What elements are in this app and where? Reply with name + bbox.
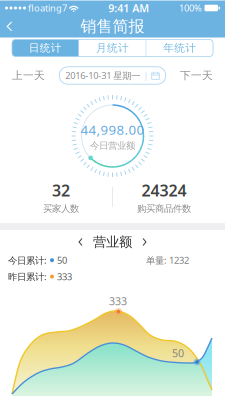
staticText: 年统计: [163, 41, 196, 54]
staticText: 销售简报: [80, 17, 144, 36]
button[interactable]: Previous metric: [75, 234, 86, 250]
staticText: 24324: [141, 180, 186, 201]
button[interactable]: Back: [0, 16, 19, 37]
staticText: 50: [172, 346, 184, 360]
staticText: 购买商品件数: [137, 203, 191, 214]
button[interactable]: 月统计: [79, 39, 146, 56]
button[interactable]: 2016-10-31 星期一: [59, 67, 166, 84]
button[interactable]: 日统计: [12, 39, 78, 56]
staticText: 上一天: [12, 69, 45, 82]
staticText: 下一天: [180, 69, 213, 82]
staticText: 今日营业额: [90, 140, 135, 151]
button[interactable]: 上一天: [6, 65, 51, 86]
staticText: 营业额: [93, 234, 132, 250]
staticText: 2016-10-31 星期一: [65, 69, 140, 82]
staticText: 9:41 AM: [108, 1, 149, 15]
staticText: 单量: 1232: [146, 254, 189, 266]
staticText: 今日累计:: [8, 254, 47, 266]
staticText: 44,998.00: [80, 121, 144, 138]
button[interactable]: 年统计: [146, 39, 213, 56]
button[interactable]: Next metric: [139, 234, 150, 250]
staticText: 昨日累计:: [8, 270, 47, 283]
button[interactable]: 下一天: [174, 65, 219, 86]
staticText: 月统计: [96, 41, 129, 54]
staticText: 日统计: [29, 41, 62, 54]
staticText: floating7: [26, 2, 67, 14]
staticText: |: [143, 69, 148, 82]
staticText: 333: [109, 294, 127, 308]
staticText: 50: [57, 254, 67, 266]
staticText: 100%: [179, 2, 202, 14]
staticText: 32: [52, 180, 70, 201]
staticText: 买家人数: [43, 203, 79, 214]
staticText: 333: [57, 270, 72, 283]
